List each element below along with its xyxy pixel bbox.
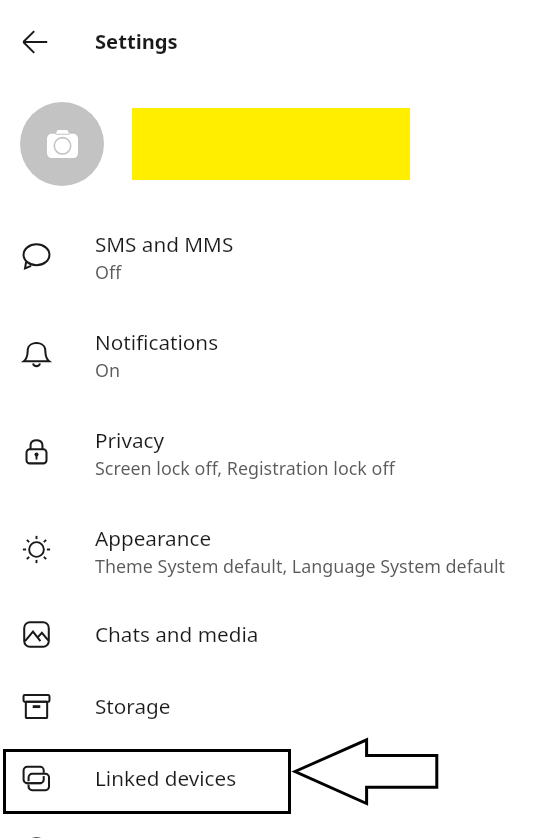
- staticText: Notifications: [95, 328, 219, 356]
- staticText: Privacy: [95, 426, 164, 454]
- staticText: Settings: [95, 27, 178, 55]
- staticText: Linked devices: [95, 764, 237, 792]
- button[interactable]: Notifications: [0, 304, 549, 402]
- button[interactable]: Privacy: [0, 402, 549, 500]
- button[interactable]: SMS and MMS: [0, 206, 549, 304]
- button[interactable]: Chats and media: [0, 598, 549, 670]
- button[interactable]: Help: [0, 814, 549, 838]
- button[interactable]: Linked devices: [0, 742, 549, 814]
- staticText: Appearance: [95, 524, 212, 552]
- staticText: On: [95, 358, 121, 382]
- button[interactable]: Profile: [0, 84, 549, 206]
- staticText: Chats and media: [95, 620, 259, 648]
- staticText: Storage: [95, 692, 171, 720]
- staticText: SMS and MMS: [95, 230, 234, 258]
- staticText: Screen lock off, Registration lock off: [95, 456, 395, 480]
- button[interactable]: Appearance: [0, 500, 549, 598]
- staticText: Off: [95, 260, 122, 284]
- staticText: Theme System default, Language System de…: [95, 554, 506, 578]
- button[interactable]: Navigate up: [9, 16, 61, 68]
- button[interactable]: Storage: [0, 670, 549, 742]
